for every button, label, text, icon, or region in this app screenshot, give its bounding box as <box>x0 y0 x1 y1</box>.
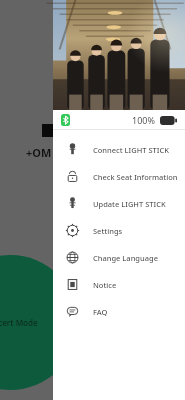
button[interactable]: Change Language <box>53 244 185 271</box>
other: Bluetooth connected <box>61 114 70 126</box>
button[interactable]: FAQ <box>53 298 185 325</box>
staticText: Update LIGHT STICK <box>93 199 166 209</box>
button[interactable]: Connect LIGHT STICK <box>53 136 185 163</box>
staticText: Connect LIGHT STICK <box>93 145 169 155</box>
staticText: Notice <box>93 280 117 290</box>
staticText: +OM <box>26 145 52 160</box>
staticText: Concert Mode <box>0 317 38 328</box>
button[interactable]: Update LIGHT STICK <box>53 190 185 217</box>
button[interactable]: Settings <box>53 217 185 244</box>
staticText: Settings <box>93 226 123 236</box>
button[interactable]: Concert Mode <box>0 255 78 390</box>
staticText: Change Language <box>93 253 158 263</box>
staticText: 100% <box>132 114 155 126</box>
staticText: Check Seat Information <box>93 172 178 182</box>
staticText: FAQ <box>93 307 108 317</box>
button[interactable]: Notice <box>53 271 185 298</box>
button[interactable]: Check Seat Information <box>53 163 185 190</box>
